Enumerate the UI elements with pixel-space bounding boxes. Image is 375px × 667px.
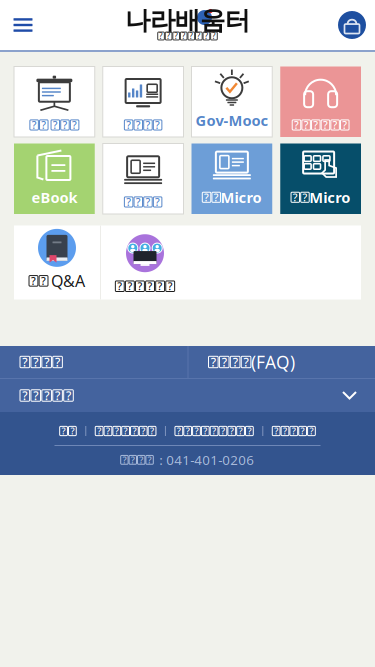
staticText: ? — [222, 354, 227, 370]
button[interactable]: ? — [60, 426, 76, 436]
staticText: ? — [115, 425, 119, 437]
staticText: ? — [31, 274, 36, 288]
staticText: ? — [239, 425, 243, 437]
staticText: ? — [247, 425, 251, 437]
staticText: ? — [44, 387, 49, 403]
staticText: ? — [292, 425, 296, 437]
staticText: ? — [127, 279, 132, 293]
button[interactable]: ? — [101, 225, 189, 299]
staticText: ? — [44, 354, 49, 370]
staticText: ? — [137, 279, 142, 293]
staticText: ? — [212, 425, 216, 437]
staticText: ? — [194, 425, 198, 437]
staticText: ? — [41, 274, 46, 288]
staticText: ? — [309, 425, 313, 437]
staticText: Micro — [220, 187, 261, 207]
button[interactable]: ? — [14, 66, 95, 137]
staticText: ? — [33, 354, 38, 370]
staticText: ? — [177, 425, 181, 437]
staticText: ? — [141, 425, 145, 437]
button[interactable]: 나라배움터 home — [125, 7, 250, 43]
staticText: ? — [155, 195, 160, 209]
staticText: ? — [136, 195, 141, 209]
staticText: ? — [22, 354, 27, 370]
button[interactable]: Log in — [329, 1, 375, 49]
staticText: ? — [244, 354, 249, 370]
staticText: ? — [150, 425, 154, 437]
button[interactable]: ? — [272, 426, 315, 436]
button[interactable]: ? — [14, 225, 100, 299]
staticText: ? — [131, 454, 135, 466]
staticText: ? — [122, 454, 126, 466]
staticText: ? — [139, 454, 143, 466]
staticText: Q&A — [51, 270, 85, 291]
staticText: ? — [301, 425, 305, 437]
button[interactable]: ? — [175, 426, 253, 436]
staticText: ? — [212, 31, 216, 41]
staticText: ? — [283, 425, 287, 437]
staticText: ? — [70, 425, 74, 437]
staticText: ? — [155, 118, 160, 132]
staticText: ? — [136, 118, 141, 132]
staticText: ? — [313, 118, 318, 132]
staticText: ? — [167, 31, 171, 41]
staticText: ? — [189, 31, 193, 41]
staticText: ? — [145, 195, 150, 209]
button[interactable]: ? — [280, 143, 361, 214]
staticText: ? — [32, 118, 37, 132]
staticText: ? — [124, 425, 128, 437]
button[interactable]: Menu — [0, 1, 46, 49]
staticText: ? — [147, 279, 152, 293]
staticText: ? — [22, 387, 27, 403]
staticText: ? — [148, 454, 152, 466]
button[interactable]: ? — [0, 379, 375, 412]
staticText: ? — [33, 387, 38, 403]
staticText: ? — [145, 118, 150, 132]
staticText: ? — [274, 425, 278, 437]
staticText: eBook — [31, 187, 77, 207]
staticText: ? — [159, 31, 163, 41]
staticText: ? — [293, 190, 298, 204]
button[interactable]: eBook — [14, 143, 95, 214]
button[interactable]: ? — [280, 66, 361, 137]
staticText: ? — [97, 425, 101, 437]
staticText: ? — [158, 279, 163, 293]
staticText: : 041-401-0206 — [156, 451, 254, 469]
staticText: ? — [106, 425, 110, 437]
staticText: ? — [126, 118, 131, 132]
button[interactable]: ? — [191, 143, 272, 214]
staticText: ? — [72, 118, 77, 132]
staticText: ? — [204, 31, 208, 41]
staticText: ? — [233, 354, 238, 370]
button[interactable]: ? — [187, 346, 375, 378]
button[interactable]: ? — [103, 143, 184, 214]
staticText: Gov-Mooc — [195, 110, 268, 130]
staticText: ? — [197, 31, 201, 41]
staticText: 나라배움터 — [125, 5, 250, 36]
button[interactable]: Gov-Mooc — [191, 66, 272, 137]
staticText: ? — [214, 190, 219, 204]
staticText: ? — [168, 279, 173, 293]
button[interactable]: ? — [95, 426, 156, 436]
button[interactable]: ? — [103, 66, 184, 137]
staticText: ? — [41, 118, 46, 132]
staticText: ? — [117, 279, 122, 293]
staticText: (FAQ) — [251, 350, 295, 373]
staticText: ? — [55, 387, 60, 403]
staticText: ? — [342, 118, 347, 132]
staticText: ? — [221, 425, 225, 437]
staticText: ? — [55, 354, 60, 370]
staticText: ? — [53, 118, 58, 132]
staticText: ? — [62, 425, 66, 437]
staticText: ? — [323, 118, 328, 132]
staticText: ? — [174, 31, 178, 41]
staticText: ? — [126, 195, 131, 209]
button[interactable]: ? — [0, 346, 187, 378]
staticText: ? — [186, 425, 190, 437]
staticText: Micro — [309, 187, 350, 207]
staticText: ? — [211, 354, 216, 370]
staticText: ? — [203, 425, 207, 437]
staticText: ? — [182, 31, 186, 41]
staticText: ? — [302, 190, 307, 204]
staticText: ? — [62, 118, 67, 132]
